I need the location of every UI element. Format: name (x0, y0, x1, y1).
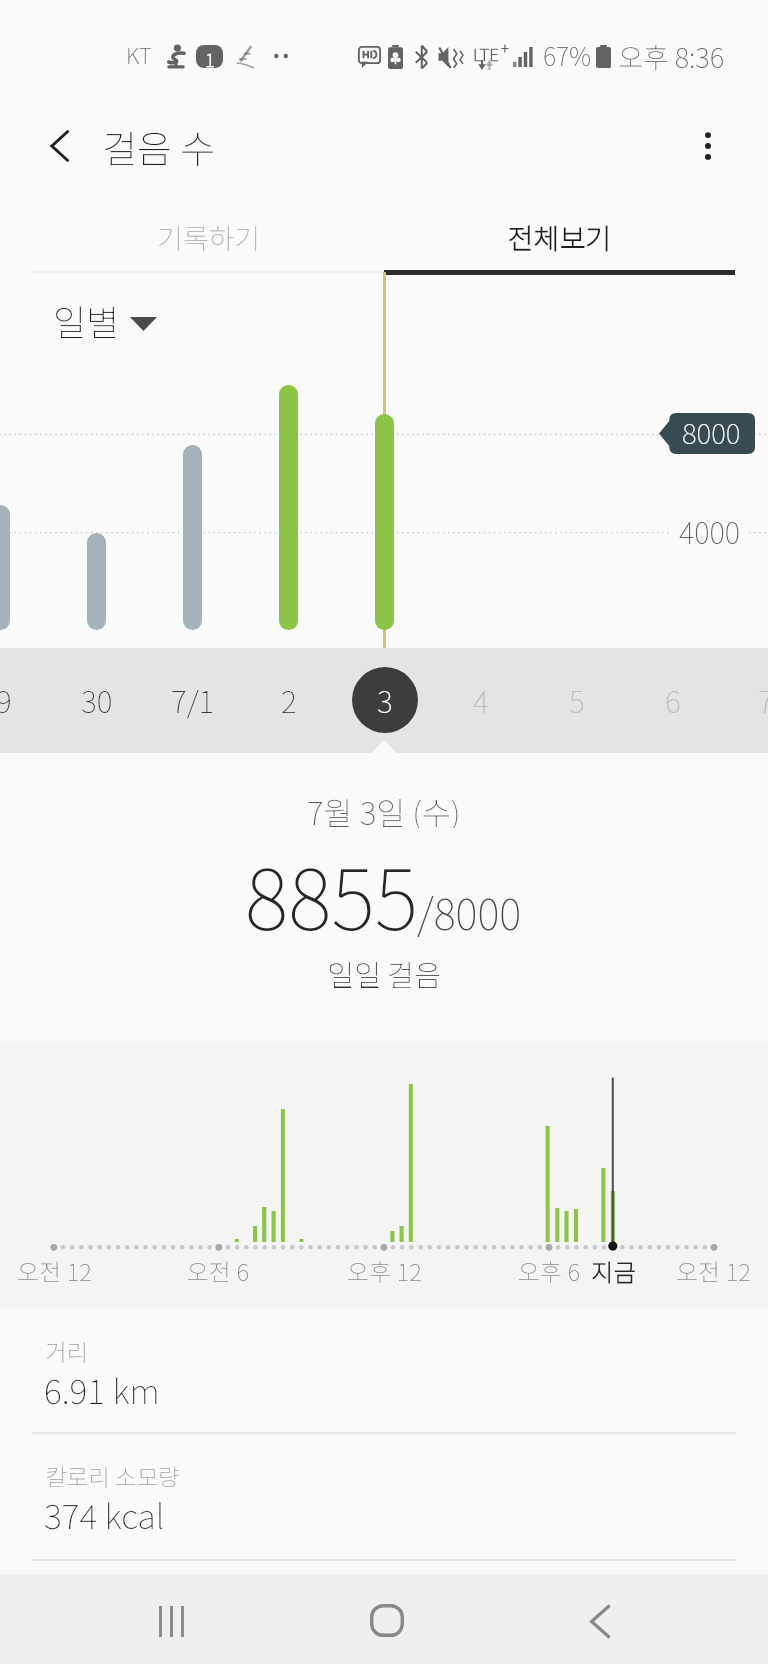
staticText: 거리 (45, 1334, 89, 1368)
staticText: 5 (569, 678, 585, 721)
button[interactable]: 일별 (48, 294, 164, 340)
staticText: 지금 (591, 1253, 636, 1288)
staticText: 30 (81, 678, 113, 721)
button[interactable]: 3 (337, 647, 433, 752)
button[interactable]: 거리 (0, 1307, 768, 1433)
button[interactable]: 2 (241, 647, 337, 752)
button[interactable]: Back (540, 1576, 660, 1664)
staticText: 오후 12 (347, 1253, 422, 1288)
staticText: 8000 (682, 412, 741, 453)
button[interactable]: 7/1 (145, 647, 241, 752)
button[interactable]: Recent apps (113, 1576, 233, 1664)
staticText: 3 (377, 678, 393, 721)
staticText: 4000 (679, 510, 741, 552)
staticText: 4 (473, 678, 489, 721)
button[interactable]: 7 (718, 647, 768, 752)
staticText: 6.91 km (44, 1365, 160, 1414)
staticText: 9 (0, 678, 12, 721)
staticText: 7 (758, 678, 768, 721)
button[interactable]: 칼로리 소모량 (0, 1432, 768, 1558)
button[interactable]: 30 (49, 647, 145, 752)
staticText: /8000 (417, 881, 522, 942)
staticText: 374 kcal (44, 1490, 165, 1539)
staticText: 걸음 수 (102, 119, 216, 174)
staticText: 전체보기 (508, 217, 612, 258)
button[interactable]: 전체보기 (384, 199, 735, 275)
staticText: 일일 걸음 (327, 952, 442, 988)
staticText: 6 (665, 678, 681, 721)
staticText: 2 (281, 678, 297, 721)
staticText: 7/1 (171, 678, 215, 721)
staticText: 오전 6 (187, 1253, 249, 1288)
button[interactable]: 6 (625, 647, 721, 752)
staticText: 67% (543, 37, 592, 73)
button[interactable]: Back (28, 110, 92, 182)
staticText: + (501, 37, 509, 59)
button[interactable]: 5 (529, 647, 625, 752)
staticText: 오전 12 (676, 1253, 751, 1288)
staticText: 오후 6 (518, 1253, 580, 1288)
staticText: 오전 12 (17, 1253, 92, 1288)
staticText: 7월 3일 (수) (307, 788, 461, 828)
staticText: 기록하기 (157, 217, 261, 258)
button[interactable]: Home (327, 1575, 447, 1664)
staticText: LTE (473, 41, 499, 66)
staticText: 오후 8:36 (618, 36, 724, 76)
staticText: 8855 (245, 834, 418, 954)
button[interactable]: 기록하기 (33, 199, 384, 275)
button[interactable]: More options (676, 110, 740, 182)
button[interactable]: 4 (433, 647, 529, 752)
staticText: 일별 (53, 294, 120, 340)
staticText: 칼로리 소모량 (45, 1459, 180, 1493)
button[interactable]: 9 (0, 647, 52, 752)
staticText: 1 (205, 45, 215, 68)
staticText: KT (126, 38, 152, 70)
